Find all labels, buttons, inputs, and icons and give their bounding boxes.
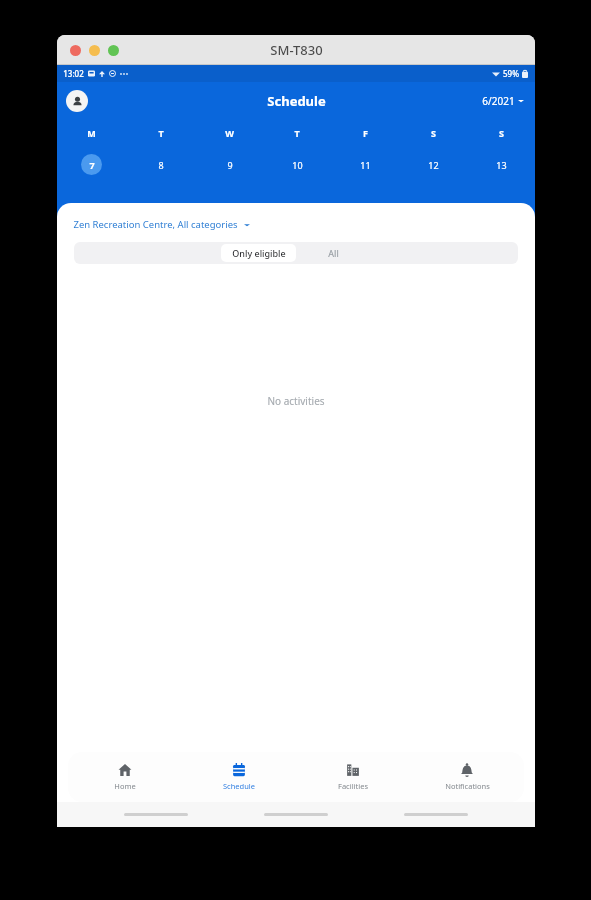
staticText: All	[328, 247, 339, 259]
button[interactable]: 10	[263, 152, 331, 176]
staticText: S	[499, 127, 504, 139]
staticText: 9	[227, 159, 233, 171]
staticText: Zen Recreation Centre, All categories	[73, 218, 238, 231]
button[interactable]: 7	[57, 152, 126, 176]
staticText: Schedule	[267, 92, 326, 110]
button[interactable]: 8	[126, 152, 195, 176]
button[interactable]: Only eligible	[74, 242, 296, 264]
staticText: 8	[158, 159, 164, 171]
button[interactable]: 6/2021	[479, 91, 527, 111]
staticText: No activities	[267, 394, 325, 408]
button[interactable]: 12	[399, 152, 467, 176]
staticText: F	[363, 127, 368, 139]
button[interactable]: Notifications	[410, 752, 524, 802]
staticText: 59%	[503, 68, 519, 79]
staticText: 7	[89, 159, 95, 171]
staticText: 13:02	[63, 68, 84, 79]
staticText: Facilities	[338, 781, 368, 791]
staticText: Home	[114, 781, 136, 791]
staticText: 10	[292, 159, 303, 171]
button[interactable]: Profile	[66, 90, 88, 112]
button[interactable]: Close	[70, 45, 81, 56]
staticText: 11	[360, 159, 371, 171]
button[interactable]: Maximize	[108, 45, 119, 56]
staticText: W	[225, 127, 234, 139]
button[interactable]: 13	[467, 152, 535, 176]
staticText: T	[294, 127, 300, 139]
button[interactable]: Minimize	[89, 45, 100, 56]
button[interactable]: All	[296, 242, 518, 264]
staticText: T	[158, 127, 164, 139]
button[interactable]: 9	[195, 152, 263, 176]
button[interactable]: Home	[68, 752, 182, 802]
staticText: 13	[496, 159, 507, 171]
button[interactable]: 11	[331, 152, 399, 176]
staticText: 12	[428, 159, 439, 171]
staticText: Schedule	[223, 781, 255, 791]
button[interactable]: Zen Recreation Centre, All categories	[71, 216, 252, 233]
staticText: Only eligible	[232, 247, 286, 259]
staticText: 6/2021	[482, 94, 515, 108]
staticText: M	[87, 127, 96, 139]
staticText: S	[431, 127, 436, 139]
button[interactable]: Schedule	[182, 752, 296, 802]
staticText: Notifications	[445, 781, 490, 791]
staticText: SM-T830	[270, 41, 323, 59]
button[interactable]: Facilities	[296, 752, 410, 802]
